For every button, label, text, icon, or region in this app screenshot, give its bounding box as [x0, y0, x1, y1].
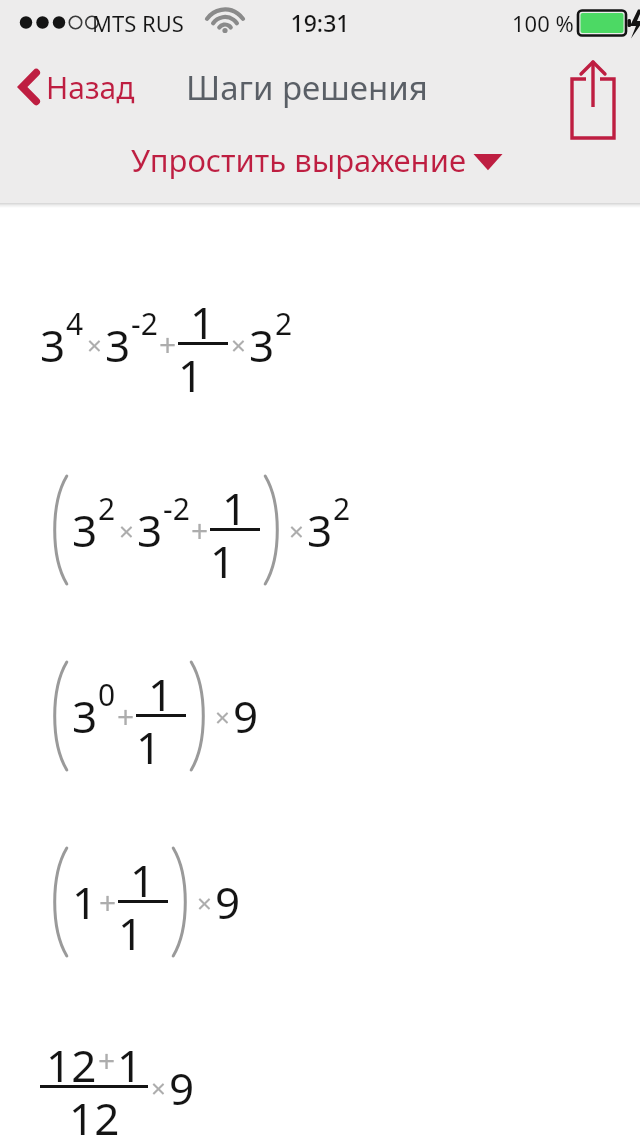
staticText: 9	[169, 1058, 195, 1118]
staticText: +	[117, 696, 135, 737]
button[interactable]: Назад	[8, 55, 139, 119]
staticText: 9	[233, 686, 259, 746]
staticText: 12	[178, 345, 228, 397]
staticText: 4	[66, 303, 84, 344]
button[interactable]: 3	[0, 437, 640, 623]
staticText: MTS RUS	[92, 8, 184, 38]
staticText: 1	[148, 664, 174, 714]
staticText: ×	[87, 327, 102, 362]
staticText: 3	[307, 500, 333, 560]
staticText: ×	[289, 513, 304, 548]
staticText: 0	[98, 674, 116, 715]
button[interactable]: 3	[0, 623, 640, 809]
staticText: ×	[231, 327, 246, 362]
staticText: ×	[197, 885, 212, 920]
button[interactable]: Упростить выражение	[121, 133, 520, 187]
staticText: 12	[210, 531, 260, 583]
staticText: 12	[118, 903, 168, 955]
staticText: +	[99, 882, 117, 923]
staticText: 2	[275, 303, 293, 344]
staticText: 2	[98, 488, 116, 529]
staticText: 3	[72, 686, 98, 746]
staticText: Назад	[46, 67, 135, 108]
staticText: 12	[69, 1088, 120, 1136]
staticText: 1	[117, 1035, 143, 1085]
staticText: 3	[40, 315, 66, 375]
staticText: -2	[131, 303, 158, 344]
staticText: Шаги решения	[186, 65, 428, 110]
button[interactable]: 3	[0, 251, 640, 437]
staticText: ×	[215, 699, 230, 734]
staticText: 12	[136, 717, 186, 769]
staticText: ×	[151, 1070, 166, 1105]
staticText: 19:31	[0, 7, 640, 38]
staticText: 100 %	[512, 8, 574, 38]
staticText: +	[191, 510, 209, 551]
button[interactable]: 12	[0, 995, 640, 1136]
staticText: 1	[190, 292, 216, 342]
staticText: 1	[130, 850, 156, 900]
staticText: 2	[333, 488, 351, 529]
button[interactable]: 1	[0, 809, 640, 995]
staticText: -2	[163, 488, 190, 529]
staticText: 1	[72, 872, 98, 932]
staticText: +	[98, 1040, 116, 1081]
staticText: 12	[46, 1035, 97, 1085]
button[interactable]: Share	[552, 53, 624, 121]
staticText: 3	[105, 315, 131, 375]
staticText: +	[159, 324, 177, 365]
staticText: 3	[137, 500, 163, 560]
staticText: 3	[249, 315, 275, 375]
staticText: ×	[119, 513, 134, 548]
staticText: Упростить выражение	[131, 139, 466, 181]
staticText: 1	[222, 478, 248, 528]
staticText: 3	[72, 500, 98, 560]
staticText: 9	[215, 872, 241, 932]
